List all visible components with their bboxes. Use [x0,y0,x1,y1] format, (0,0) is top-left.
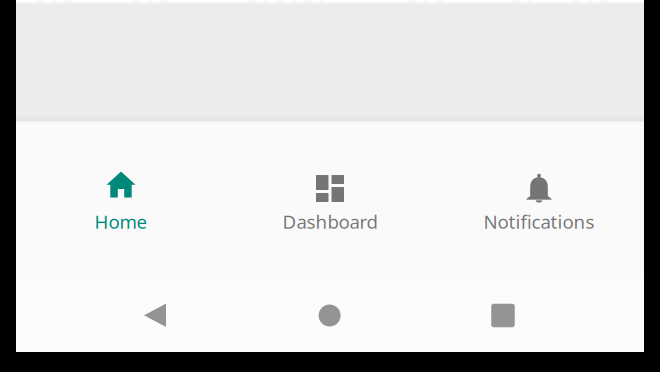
button[interactable]: Home [16,123,225,279]
staticText: Home [94,209,147,234]
staticText: Dashboard [282,209,377,234]
button[interactable]: Recent apps [472,279,534,352]
button[interactable]: Notifications [434,123,643,279]
button[interactable]: Back [124,279,186,352]
button[interactable]: Home [299,279,361,352]
staticText: Notifications [483,209,594,234]
button[interactable]: Dashboard [225,123,434,279]
